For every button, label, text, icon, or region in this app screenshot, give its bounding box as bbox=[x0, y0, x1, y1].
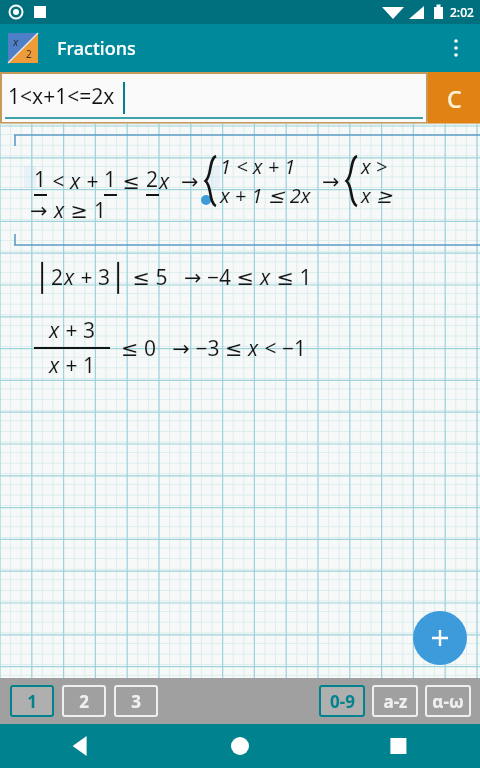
button[interactable]: 1 bbox=[10, 685, 54, 717]
staticText: ≥ bbox=[65, 196, 94, 225]
button[interactable]: 3 bbox=[114, 685, 158, 717]
staticText: α-ω bbox=[432, 690, 464, 713]
staticText: 2 bbox=[26, 47, 32, 61]
staticText: Fractions bbox=[57, 36, 136, 61]
staticText: 1 bbox=[27, 690, 37, 713]
staticText: 2 bbox=[51, 263, 64, 292]
staticText: 1 < x + 1 bbox=[220, 153, 296, 180]
staticText: C bbox=[447, 83, 462, 114]
button[interactable]: C bbox=[428, 72, 480, 124]
staticText: → bbox=[30, 196, 54, 225]
staticText: │ bbox=[34, 262, 51, 293]
staticText: x + 1 ≤ 2x bbox=[220, 182, 311, 209]
staticText: ≤ 1 bbox=[271, 263, 312, 292]
staticText: x bbox=[159, 167, 170, 196]
staticText: 1 bbox=[34, 165, 47, 194]
button[interactable]: 0-9 bbox=[319, 685, 365, 717]
staticText: x bbox=[64, 263, 75, 292]
button[interactable]: 2 bbox=[62, 685, 106, 717]
staticText: 2 bbox=[79, 690, 89, 713]
button[interactable]: Add bbox=[413, 611, 467, 665]
staticText: + 3 bbox=[75, 263, 110, 292]
staticText: < −1 bbox=[259, 334, 306, 363]
staticText: ≤ bbox=[117, 167, 146, 196]
staticText: + bbox=[81, 167, 104, 196]
staticText: ≤ 0 → −3 ≤ bbox=[110, 334, 248, 363]
staticText: 3 bbox=[131, 690, 141, 713]
staticText: x bbox=[13, 34, 19, 49]
button[interactable]: x bbox=[8, 33, 38, 63]
button[interactable]: │ bbox=[34, 262, 312, 293]
staticText: 1 bbox=[94, 196, 107, 225]
staticText: x bbox=[260, 263, 271, 292]
button[interactable]: 1 bbox=[0, 134, 480, 246]
staticText: x bbox=[49, 351, 60, 380]
staticText: x bbox=[49, 316, 60, 345]
button[interactable]: 1<x+1<=2x bbox=[2, 74, 426, 122]
staticText: < bbox=[47, 167, 70, 196]
staticText: x bbox=[248, 334, 259, 363]
staticText: x bbox=[54, 196, 65, 225]
button[interactable]: x bbox=[34, 316, 306, 380]
staticText: │ bbox=[110, 262, 127, 293]
staticText: ≤ 5 → −4 ≤ bbox=[127, 263, 260, 292]
staticText: a-z bbox=[383, 690, 408, 713]
staticText: + 3 bbox=[60, 316, 95, 345]
button[interactable]: a-z bbox=[372, 685, 418, 717]
staticText: 1<x+1<=2x bbox=[8, 82, 115, 111]
staticText: + 1 bbox=[60, 351, 95, 380]
staticText: 2:02 bbox=[450, 4, 474, 20]
button[interactable]: α-ω bbox=[425, 685, 471, 717]
staticText: 2 bbox=[146, 165, 159, 194]
staticText: 1 bbox=[104, 165, 117, 194]
staticText: 0-9 bbox=[330, 690, 355, 713]
staticText: → bbox=[311, 167, 345, 196]
staticText: x ≥ bbox=[361, 182, 393, 209]
staticText: → bbox=[170, 167, 204, 196]
staticText: x bbox=[70, 167, 81, 196]
staticText: x > bbox=[361, 153, 388, 180]
button[interactable]: More options bbox=[432, 24, 480, 72]
